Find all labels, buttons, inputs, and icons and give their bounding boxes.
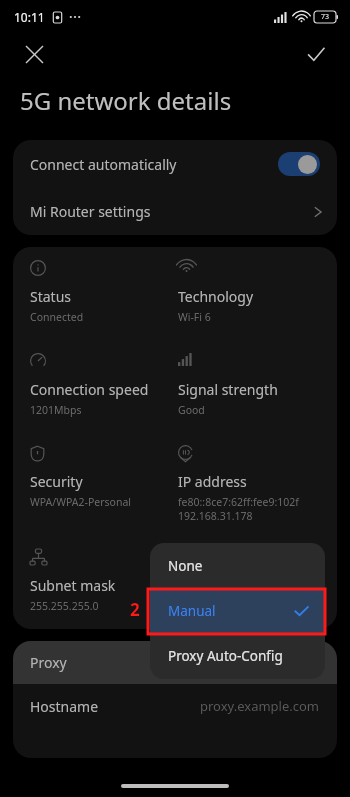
staticText: fe80::8ce7:62ff:fee9:102f: [178, 495, 299, 509]
staticText: Manual: [168, 602, 294, 620]
button[interactable]: Mi Router settings: [13, 188, 337, 235]
staticText: Proxy: [30, 653, 260, 672]
staticText: Signal strength: [178, 380, 278, 399]
button[interactable]: Proxy Auto-Config: [150, 633, 325, 678]
button[interactable]: Hostname: [13, 684, 337, 728]
button[interactable]: Manual: [150, 588, 325, 633]
staticText: Manual: [260, 654, 306, 672]
staticText: 10:11: [14, 9, 45, 25]
staticText: None: [168, 557, 309, 575]
staticText: Status: [30, 287, 72, 306]
staticText: 2: [130, 598, 140, 621]
staticText: Hostname: [30, 697, 200, 716]
staticText: Connect automatically: [30, 155, 278, 174]
staticText: Good: [178, 403, 205, 417]
staticText: WPA/WPA2-Personal: [30, 495, 131, 509]
staticText: 255.255.255.0: [30, 599, 99, 613]
staticText: proxy.example.com: [200, 697, 320, 715]
button[interactable]: Connect automatically: [13, 140, 337, 188]
staticText: Mi Router settings: [30, 202, 314, 221]
button[interactable]: Proxy: [13, 641, 337, 684]
staticText: Connection speed: [30, 380, 149, 399]
button[interactable]: Close: [14, 34, 54, 74]
staticText: Technology: [178, 287, 254, 306]
staticText: 1201Mbps: [30, 403, 82, 417]
staticText: Connected: [30, 310, 84, 324]
staticText: Wi-Fi 6: [178, 310, 211, 324]
staticText: Proxy Auto-Config: [168, 647, 309, 665]
staticText: IP address: [178, 472, 247, 491]
staticText: Security: [30, 472, 83, 491]
button[interactable]: Confirm: [296, 34, 336, 74]
staticText: Subnet mask: [30, 576, 116, 595]
button[interactable]: None: [150, 543, 325, 588]
staticText: 192.168.31.178: [178, 509, 253, 523]
staticText: 73: [321, 12, 330, 22]
staticText: 5G network details: [20, 84, 232, 117]
